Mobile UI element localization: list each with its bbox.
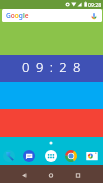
button[interactable]: Home [38,166,64,183]
button[interactable]: Back [11,166,37,183]
staticText: 09:28 [88,1,102,8]
button[interactable]: Google [2,9,102,22]
button[interactable]: All apps [45,150,57,162]
staticText: Google [6,11,29,20]
staticText: 09:28 [3,58,103,76]
button[interactable]: Recents [65,166,91,183]
button[interactable]: Camera [86,150,98,162]
button[interactable]: Messages [23,150,35,162]
button[interactable]: Chrome [65,150,77,162]
button[interactable]: Phone [3,150,15,162]
